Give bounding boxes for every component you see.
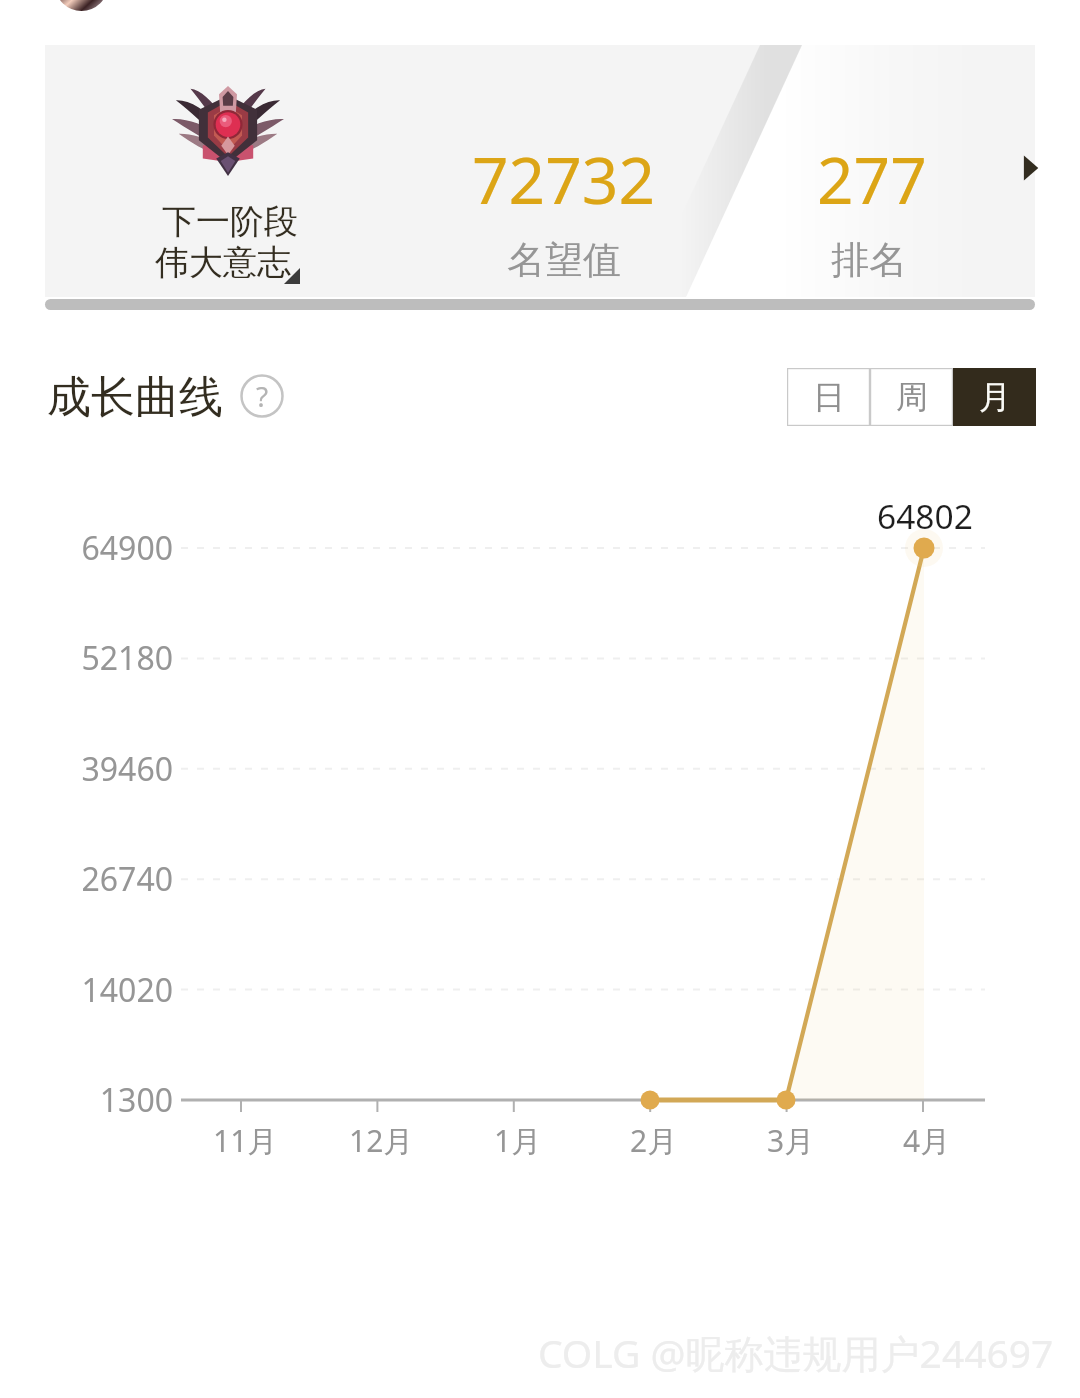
staticText: 月 — [979, 377, 1011, 417]
staticText: 277 — [817, 136, 927, 223]
staticText: 26740 — [81, 857, 173, 901]
staticText: 4月 — [903, 1120, 951, 1161]
button[interactable]: 名望值 72732 · 排名 277 — [45, 45, 1035, 297]
staticText: 周 — [896, 377, 928, 417]
staticText: 11月 — [213, 1120, 278, 1161]
staticText: COLG @昵称违规用户244697 — [538, 1326, 1054, 1379]
staticText: 39460 — [81, 747, 173, 791]
button[interactable]: 日 — [787, 368, 870, 426]
staticText: 64802 — [877, 493, 973, 537]
staticText: 64900 — [81, 526, 173, 570]
staticText: 2月 — [630, 1120, 678, 1161]
staticText: 72732 — [472, 136, 656, 223]
button[interactable]: 查看更多 — [1015, 147, 1051, 189]
staticText: 伟大意志 — [155, 241, 291, 284]
staticText: 3月 — [767, 1120, 815, 1161]
staticText: 排名 — [831, 236, 907, 284]
button[interactable]: 月 — [953, 368, 1036, 426]
staticText: 12月 — [349, 1120, 414, 1161]
staticText: 1月 — [494, 1120, 542, 1161]
button[interactable]: 说明 — [240, 374, 284, 418]
staticText: 下一阶段 — [162, 200, 298, 243]
staticText: 名望值 — [507, 236, 621, 284]
staticText: ? — [256, 377, 269, 415]
staticText: 1300 — [99, 1078, 173, 1122]
button[interactable]: 周 — [870, 368, 953, 426]
staticText: 14020 — [81, 968, 173, 1012]
staticText: 日 — [813, 377, 845, 417]
staticText: 52180 — [81, 636, 173, 680]
staticText: 成长曲线 — [47, 370, 223, 425]
